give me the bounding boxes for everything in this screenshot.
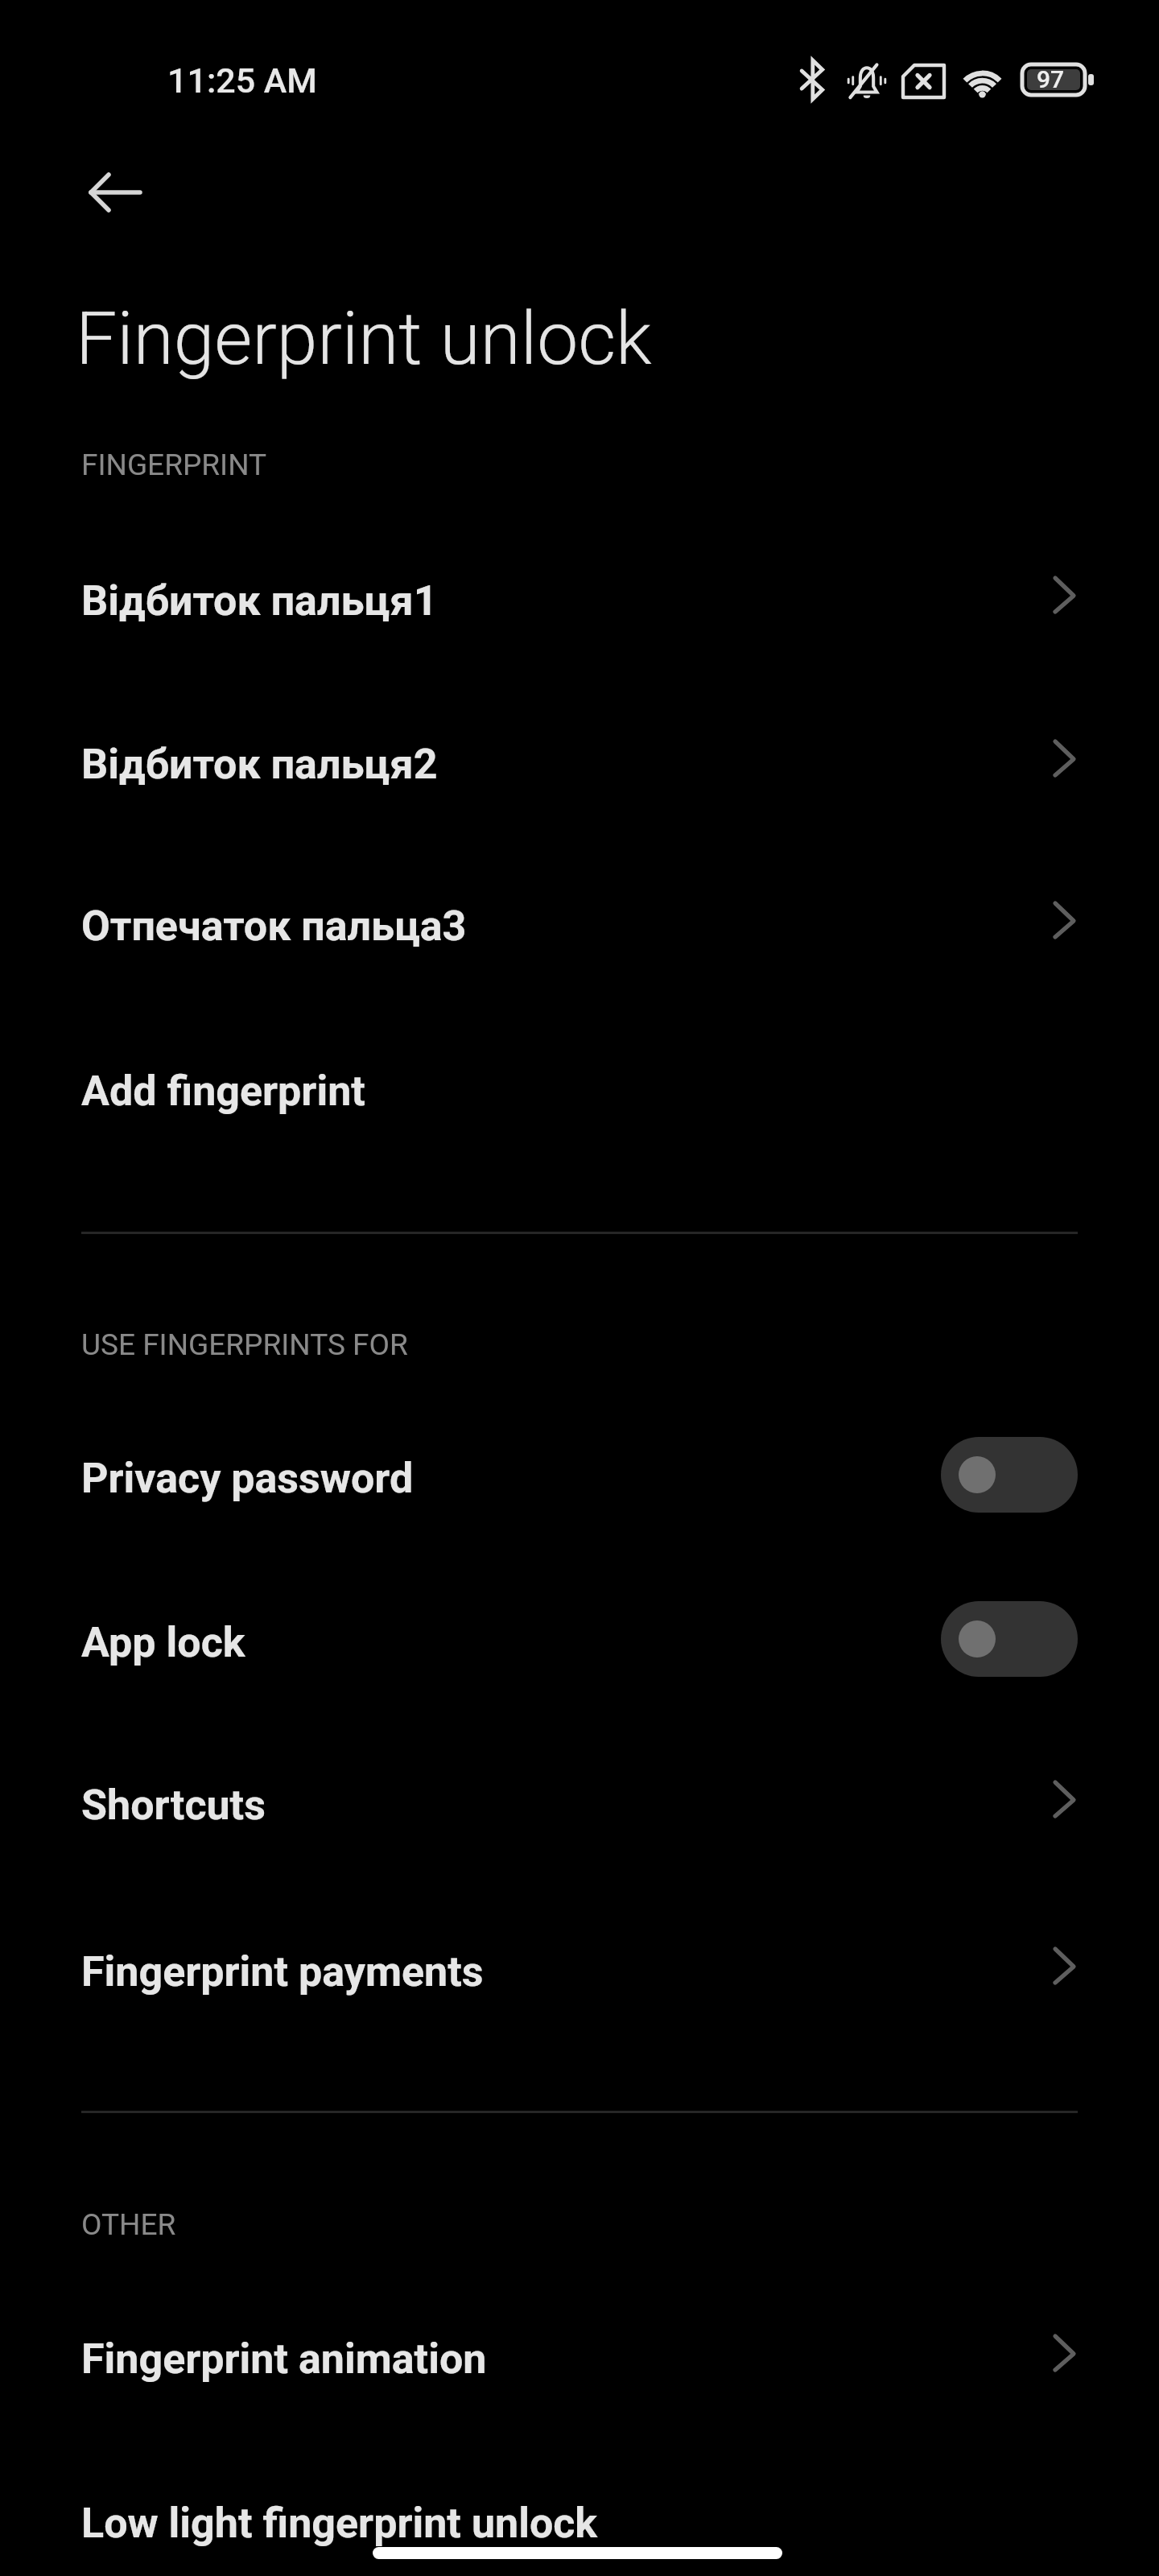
button[interactable]: App lock xyxy=(0,1567,1159,1729)
staticText: FINGERPRINT xyxy=(81,448,267,482)
staticText: OTHER xyxy=(81,2207,176,2242)
button[interactable]: App lock xyxy=(941,1601,1078,1677)
staticText: Fingerprint animation xyxy=(81,2334,487,2384)
button[interactable]: Відбиток пальця2 xyxy=(0,688,1159,851)
staticText: USE FINGERPRINTS FOR xyxy=(81,1327,408,1362)
staticText: Low light fingerprint unlock xyxy=(81,2499,598,2548)
button[interactable]: Fingerprint animation xyxy=(0,2283,1159,2446)
staticText: Privacy password xyxy=(81,1454,414,1503)
button[interactable]: Privacy password xyxy=(941,1437,1078,1513)
staticText: Add fingerprint xyxy=(81,1067,365,1116)
staticText: 97 xyxy=(1037,65,1065,93)
staticText: Fingerprint unlock xyxy=(76,296,652,382)
button[interactable]: Add fingerprint xyxy=(0,1015,1159,1178)
staticText: Відбиток пальця2 xyxy=(81,740,438,789)
staticText: Отпечаток пальца3 xyxy=(81,902,467,951)
staticText: Shortcuts xyxy=(81,1781,266,1830)
button[interactable]: Back xyxy=(58,145,153,240)
button[interactable]: Privacy password xyxy=(0,1402,1159,1565)
staticText: 11:25 AM xyxy=(167,60,317,101)
staticText: Відбиток пальця1 xyxy=(81,576,438,625)
button[interactable]: Відбиток пальця1 xyxy=(0,525,1159,687)
button[interactable]: Shortcuts xyxy=(0,1729,1159,1892)
staticText: App lock xyxy=(81,1618,245,1667)
button[interactable]: Отпечаток пальца3 xyxy=(0,850,1159,1013)
button[interactable]: Low light fingerprint unlock xyxy=(0,2447,1159,2576)
button[interactable]: Fingerprint payments xyxy=(0,1896,1159,2058)
staticText: Fingerprint payments xyxy=(81,1947,484,1996)
